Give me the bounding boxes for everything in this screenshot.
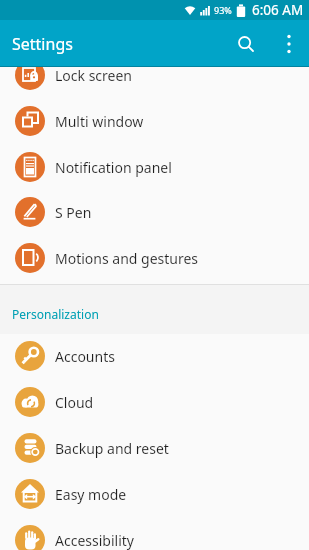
button[interactable]: Multi window — [0, 98, 309, 144]
button[interactable] — [224, 20, 268, 67]
button[interactable]: S Pen — [0, 189, 309, 235]
staticText: Settings — [12, 33, 73, 55]
button[interactable]: Notification panel — [0, 144, 309, 190]
button[interactable]: Lock screen — [0, 67, 309, 98]
staticText: Notification panel — [55, 158, 172, 177]
staticText: Accessibility — [55, 531, 134, 550]
button[interactable]: Backup and reset — [0, 425, 309, 471]
staticText: 93% — [214, 4, 232, 16]
button[interactable]: Accessibility — [0, 517, 309, 550]
staticText: Backup and reset — [55, 439, 169, 458]
staticText: 6:06 AM — [252, 1, 304, 19]
button[interactable]: Cloud — [0, 379, 309, 425]
staticText: Multi window — [55, 112, 144, 131]
staticText: S Pen — [55, 203, 92, 222]
staticText: Personalization — [12, 306, 99, 322]
button[interactable] — [268, 20, 309, 67]
button[interactable]: Accounts — [0, 333, 309, 379]
staticText: Accounts — [55, 347, 115, 366]
staticText: Motions and gestures — [55, 249, 199, 268]
button[interactable]: Motions and gestures — [0, 235, 309, 281]
staticText: Lock screen — [55, 67, 133, 85]
staticText: Easy mode — [55, 485, 127, 504]
staticText: Cloud — [55, 393, 94, 412]
button[interactable]: Easy mode — [0, 471, 309, 517]
